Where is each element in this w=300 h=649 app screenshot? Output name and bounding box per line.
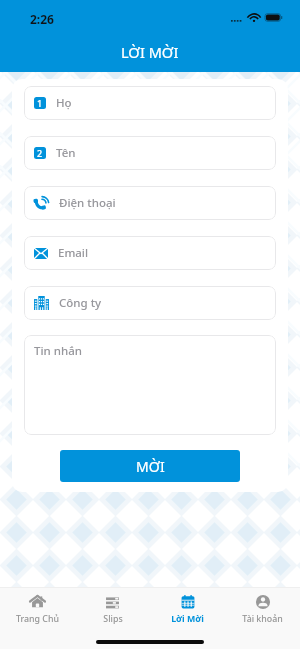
staticText: 1: [37, 97, 43, 109]
button[interactable]: Tin nhắn: [24, 335, 276, 435]
staticText: MỜI: [136, 457, 165, 476]
staticText: Slips: [103, 613, 123, 625]
button[interactable]: 1: [24, 86, 276, 120]
button[interactable]: Tài khoản: [225, 588, 300, 630]
staticText: 2: [37, 147, 43, 159]
button[interactable]: MỜI: [60, 450, 240, 482]
staticText: LỜI MỜI: [121, 42, 179, 62]
staticText: Email: [58, 245, 89, 261]
staticText: Tin nhắn: [34, 343, 82, 359]
staticText: Tên: [56, 145, 76, 161]
button[interactable]: Slips: [75, 588, 150, 630]
staticText: Trang Chủ: [16, 613, 59, 625]
staticText: Công ty: [59, 295, 102, 311]
button[interactable]: 2: [24, 136, 276, 170]
staticText: 2:26: [30, 11, 54, 27]
button[interactable]: Trang Chủ: [0, 588, 75, 630]
button[interactable]: Công ty: [24, 286, 276, 320]
staticText: Tài khoản: [242, 613, 283, 625]
button[interactable]: Điện thoại: [24, 186, 276, 220]
staticText: Họ: [56, 95, 72, 111]
button[interactable]: Lời Mời: [150, 588, 225, 630]
button[interactable]: Email: [24, 236, 276, 270]
staticText: Điện thoại: [59, 195, 116, 211]
staticText: Lời Mời: [171, 613, 204, 625]
